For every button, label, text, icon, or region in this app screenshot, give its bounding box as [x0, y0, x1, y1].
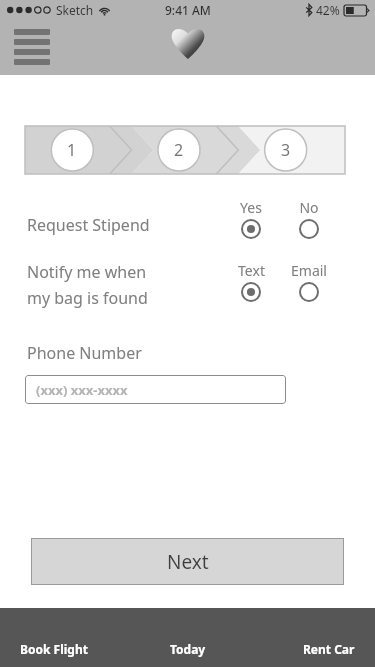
button[interactable]: 3: [238, 126, 345, 174]
button[interactable]: Next: [31, 538, 344, 585]
staticText: Email: [291, 261, 327, 280]
staticText: Yes: [240, 198, 262, 217]
button[interactable]: Yes: [236, 214, 266, 244]
button[interactable]: (xxx) xxx-xxxx: [25, 375, 286, 404]
button[interactable]: Rent Car: [250, 608, 375, 667]
staticText: 1: [67, 139, 77, 161]
button[interactable]: Book Flight: [0, 608, 125, 667]
button[interactable]: 1: [25, 126, 131, 174]
staticText: Text: [238, 261, 265, 280]
button[interactable]: Email: [294, 277, 324, 307]
staticText: No: [299, 198, 319, 217]
staticText: Request Stipend: [27, 214, 150, 236]
staticText: (xxx) xxx-xxxx: [36, 381, 128, 399]
button[interactable]: 2: [131, 126, 238, 174]
button[interactable]: Text: [236, 277, 266, 307]
button[interactable]: Logo: [171, 26, 205, 60]
staticText: Phone Number: [27, 342, 142, 364]
staticText: 42%: [316, 2, 340, 18]
staticText: my bag is found: [27, 287, 148, 309]
staticText: 2: [174, 139, 184, 161]
staticText: Rent Car: [303, 641, 355, 657]
staticText: 9:41 AM: [165, 2, 211, 18]
staticText: Next: [167, 549, 209, 575]
button[interactable]: Menu: [14, 29, 52, 65]
button[interactable]: No: [294, 214, 324, 244]
staticText: Book Flight: [20, 641, 88, 657]
staticText: Today: [170, 641, 206, 657]
staticText: Notify me when: [27, 261, 147, 283]
staticText: 3: [281, 139, 291, 161]
button[interactable]: Today: [125, 608, 250, 667]
staticText: Sketch: [56, 2, 94, 18]
